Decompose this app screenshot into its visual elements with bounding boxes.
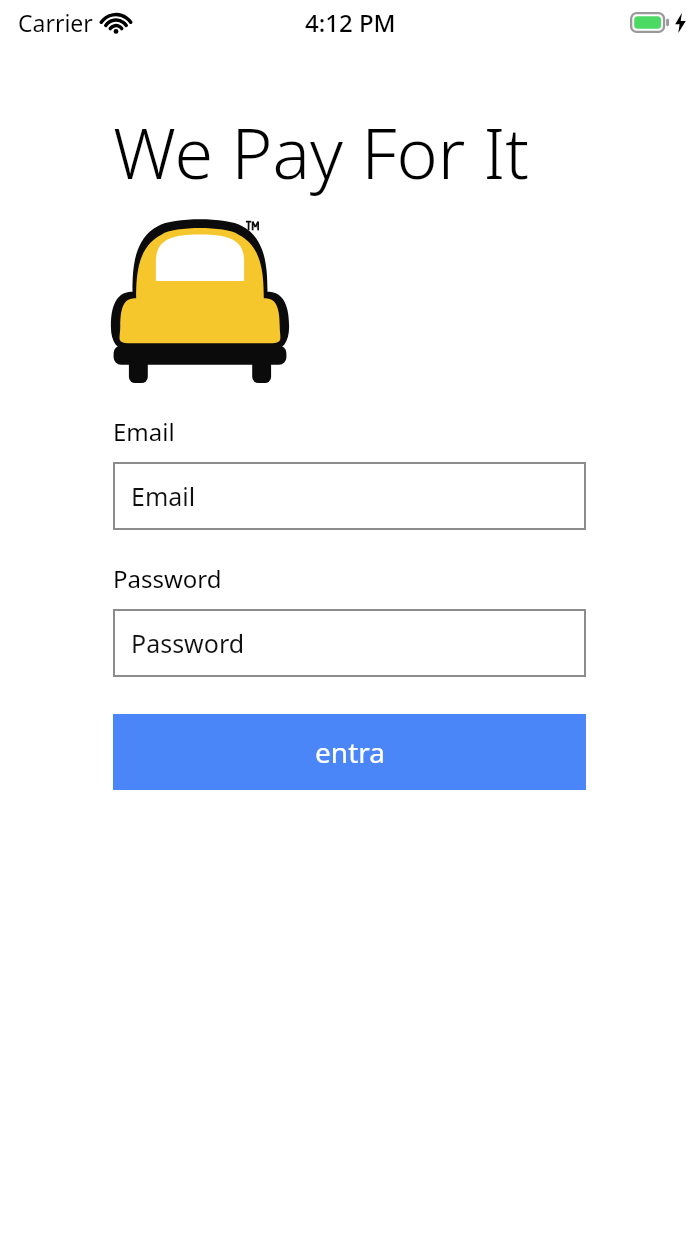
- staticText: Password: [131, 626, 245, 660]
- button[interactable]: Email: [113, 462, 586, 530]
- staticText: Carrier: [18, 7, 93, 38]
- staticText: 4:12 PM: [305, 6, 396, 39]
- other: We Pay For It logo: [110, 217, 290, 383]
- staticText: Email: [131, 479, 196, 513]
- staticText: Password: [113, 562, 222, 595]
- button[interactable]: entra: [113, 714, 586, 790]
- staticText: We Pay For It: [113, 104, 530, 199]
- button[interactable]: Password: [113, 609, 586, 677]
- staticText: entra: [315, 733, 385, 771]
- staticText: Email: [113, 415, 175, 448]
